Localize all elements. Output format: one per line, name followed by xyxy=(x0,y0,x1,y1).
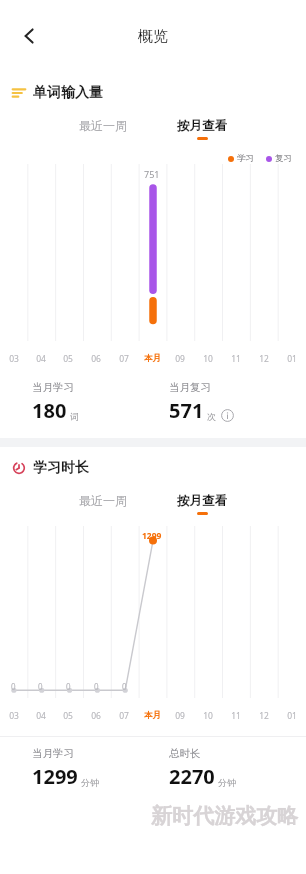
staticText: 总时长 xyxy=(169,747,201,760)
staticText: 新时代游戏攻略 xyxy=(151,803,298,829)
staticText: 按月查看 xyxy=(177,493,227,509)
staticText: 本月 xyxy=(144,710,161,721)
staticText: 10 xyxy=(203,710,213,722)
button[interactable]: 按月查看 xyxy=(163,115,241,143)
staticText: 2270 xyxy=(169,763,215,790)
staticText: 0 xyxy=(11,681,16,692)
staticText: 03 xyxy=(9,710,19,722)
staticText: 04 xyxy=(36,710,46,722)
staticText: 12 xyxy=(259,353,269,365)
staticText: 学习 xyxy=(237,153,254,164)
staticText: 05 xyxy=(63,710,73,722)
staticText: 1299 xyxy=(32,763,78,790)
staticText: 05 xyxy=(63,353,73,365)
staticText: 次 xyxy=(207,411,216,422)
staticText: 10 xyxy=(203,353,213,365)
staticText: 分钟 xyxy=(81,777,99,788)
staticText: 12 xyxy=(259,710,269,722)
staticText: 词 xyxy=(70,411,79,422)
staticText: 180 xyxy=(32,397,67,424)
staticText: 06 xyxy=(91,353,101,365)
staticText: 0 xyxy=(122,681,127,692)
staticText: 本月 xyxy=(144,353,161,364)
staticText: 01 xyxy=(287,353,297,365)
button[interactable]: Info xyxy=(221,409,234,422)
button[interactable]: 当月复习 xyxy=(169,381,306,424)
staticText: 最近一周 xyxy=(79,493,127,508)
staticText: 分钟 xyxy=(218,777,236,788)
staticText: 03 xyxy=(9,353,19,365)
staticText: 0 xyxy=(66,681,71,692)
button[interactable]: 总时长 xyxy=(169,747,306,790)
staticText: 07 xyxy=(119,710,129,722)
button[interactable]: 当月学习 xyxy=(32,747,169,790)
staticText: 当月学习 xyxy=(32,381,74,394)
button[interactable]: 按月查看 xyxy=(163,490,241,518)
staticText: 07 xyxy=(119,353,129,365)
staticText: 最近一周 xyxy=(79,118,127,133)
staticText: 11 xyxy=(231,710,241,722)
button[interactable]: Back xyxy=(8,15,50,57)
button[interactable]: 最近一周 xyxy=(65,115,141,136)
staticText: 11 xyxy=(231,353,241,365)
staticText: 751 xyxy=(144,168,160,180)
staticText: 当月学习 xyxy=(32,747,74,760)
staticText: 571 xyxy=(169,397,204,424)
button[interactable]: 当月学习 xyxy=(32,381,169,424)
staticText: 学习时长 xyxy=(33,459,89,477)
staticText: 复习 xyxy=(275,153,292,164)
staticText: 当月复习 xyxy=(169,381,211,394)
staticText: 1299 xyxy=(142,530,162,542)
staticText: 06 xyxy=(91,710,101,722)
staticText: 概览 xyxy=(138,27,168,46)
button[interactable]: 最近一周 xyxy=(65,490,141,511)
staticText: 按月查看 xyxy=(177,118,227,134)
staticText: 09 xyxy=(175,353,185,365)
staticText: 0 xyxy=(38,681,43,692)
staticText: 单词输入量 xyxy=(33,84,103,102)
staticText: 04 xyxy=(36,353,46,365)
staticText: 01 xyxy=(287,710,297,722)
staticText: 0 xyxy=(94,681,99,692)
staticText: 09 xyxy=(175,710,185,722)
